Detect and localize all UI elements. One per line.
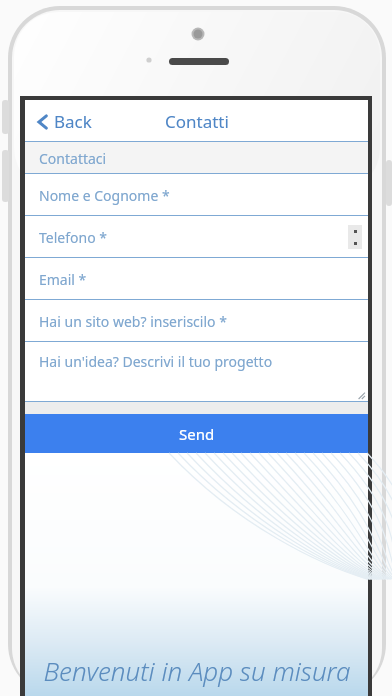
button[interactable]: Email * xyxy=(25,258,368,300)
button[interactable]: Nome e Cognome * xyxy=(25,174,368,216)
other: Back xyxy=(37,113,49,131)
staticText: Nome e Cognome * xyxy=(39,186,170,205)
staticText: Hai un'idea? Descrivi il tuo progetto xyxy=(39,352,273,371)
staticText: Telefono * xyxy=(39,228,107,247)
staticText: Back xyxy=(54,110,92,133)
button[interactable]: Hai un'idea? Descrivi il tuo progetto xyxy=(25,342,368,402)
staticText: Benvenuti in App su misura xyxy=(43,653,351,688)
button[interactable]: Hai un sito web? inseriscilo * xyxy=(25,300,368,342)
button[interactable]: Telefono * xyxy=(25,216,368,258)
button[interactable]: Decrease xyxy=(348,237,362,249)
staticText: Contattaci xyxy=(39,149,107,168)
button[interactable]: Increase xyxy=(348,225,362,237)
staticText: Contatti xyxy=(165,110,229,133)
button[interactable]: Back xyxy=(33,106,96,137)
button[interactable]: Send xyxy=(25,414,368,453)
staticText: Send xyxy=(179,424,215,444)
staticText: Hai un sito web? inseriscilo * xyxy=(39,312,227,331)
staticText: Email * xyxy=(39,270,87,289)
